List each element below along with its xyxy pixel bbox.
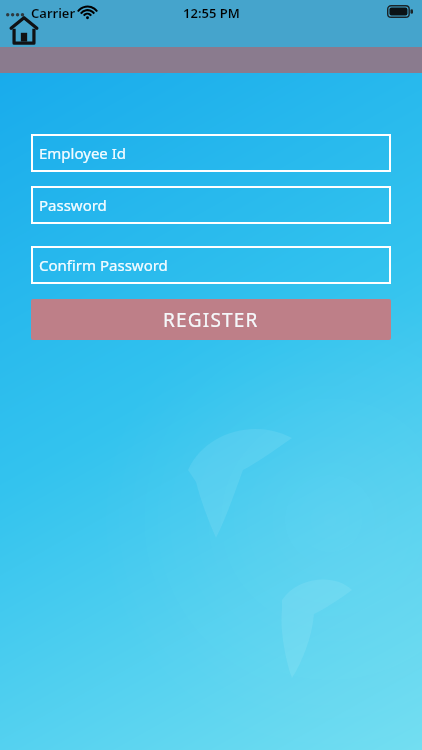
staticText: 12:55 PM — [183, 4, 240, 22]
button[interactable]: Employee Id — [31, 134, 391, 172]
button[interactable]: Confirm Password — [31, 246, 391, 284]
button[interactable]: Home — [10, 16, 38, 44]
staticText: Employee Id — [39, 143, 127, 163]
staticText: Carrier — [31, 4, 76, 22]
staticText: Confirm Password — [39, 255, 168, 275]
button[interactable]: REGISTER — [31, 299, 391, 340]
staticText: REGISTER — [163, 307, 259, 333]
staticText: Password — [39, 195, 107, 215]
button[interactable]: Password — [31, 186, 391, 224]
